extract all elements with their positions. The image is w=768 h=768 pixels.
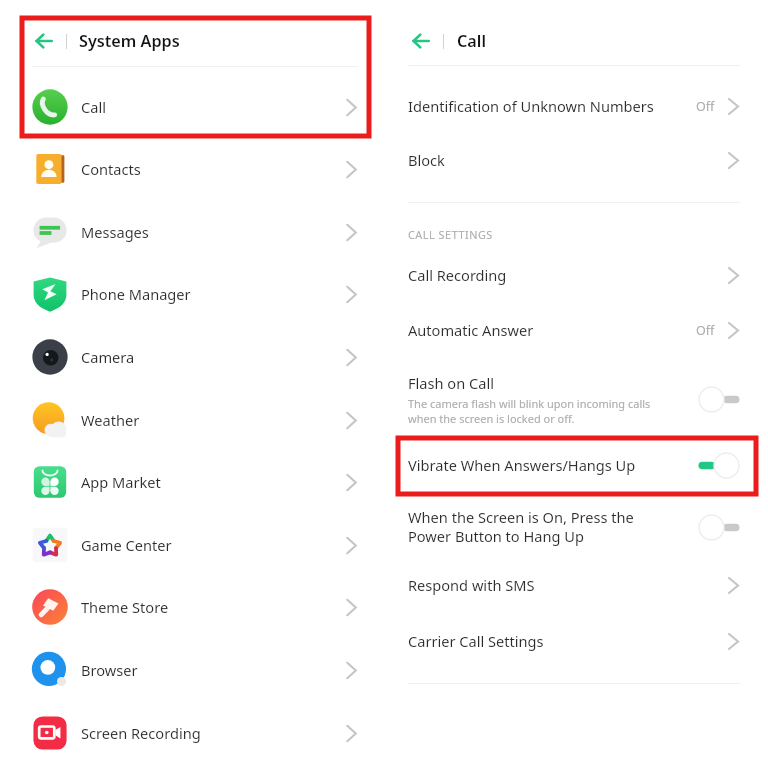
- staticText: Call Recording: [408, 265, 507, 285]
- button[interactable]: Back: [31, 28, 57, 54]
- staticText: Weather: [81, 410, 140, 430]
- button[interactable]: Toggle on: [698, 452, 740, 479]
- staticText: Carrier Call Settings: [408, 631, 544, 651]
- staticText: CALL SETTINGS: [408, 227, 493, 242]
- staticText: When the Screen is On, Press the Power B…: [408, 507, 634, 547]
- button[interactable]: Flash on Call: [384, 363, 768, 435]
- button[interactable]: Screen Recording: [0, 702, 384, 764]
- button[interactable]: Identification of Unknown Numbers: [384, 81, 768, 131]
- staticText: System Apps: [79, 30, 180, 52]
- staticText: Flash on Call: [408, 373, 494, 393]
- button[interactable]: Back: [409, 28, 433, 54]
- staticText: Identification of Unknown Numbers: [408, 96, 654, 116]
- button[interactable]: Call Recording: [384, 250, 768, 300]
- button[interactable]: Toggle off: [698, 386, 740, 413]
- button[interactable]: Messages: [0, 201, 384, 263]
- button[interactable]: Theme Store: [0, 576, 384, 638]
- button[interactable]: Carrier Call Settings: [384, 616, 768, 666]
- staticText: Contacts: [81, 159, 141, 179]
- staticText: Phone Manager: [81, 284, 191, 304]
- staticText: Off: [696, 322, 715, 339]
- button[interactable]: Camera: [0, 326, 384, 388]
- staticText: Screen Recording: [81, 723, 201, 743]
- button[interactable]: When the Screen is On, Press the Power B…: [384, 496, 768, 558]
- staticText: App Market: [81, 472, 161, 492]
- staticText: Game Center: [81, 535, 172, 555]
- button[interactable]: Browser: [0, 639, 384, 701]
- button[interactable]: Game Center: [0, 514, 384, 576]
- staticText: Browser: [81, 660, 138, 680]
- button[interactable]: Call: [0, 76, 384, 138]
- button[interactable]: Block: [384, 135, 768, 185]
- button[interactable]: Weather: [0, 389, 384, 451]
- staticText: Messages: [81, 222, 149, 242]
- staticText: Off: [696, 98, 715, 115]
- staticText: Call: [457, 30, 486, 52]
- staticText: Call: [81, 97, 106, 117]
- staticText: The camera flash will blink upon incomin…: [408, 396, 651, 426]
- staticText: Automatic Answer: [408, 320, 534, 340]
- staticText: Respond with SMS: [408, 575, 535, 595]
- button[interactable]: Respond with SMS: [384, 560, 768, 610]
- staticText: Camera: [81, 347, 135, 367]
- staticText: Vibrate When Answers/Hangs Up: [408, 455, 636, 475]
- button[interactable]: Toggle off: [698, 514, 740, 541]
- button[interactable]: Automatic Answer: [384, 305, 768, 355]
- button[interactable]: Phone Manager: [0, 263, 384, 325]
- button[interactable]: Contacts: [0, 138, 384, 200]
- button[interactable]: Vibrate When Answers/Hangs Up: [384, 440, 768, 490]
- button[interactable]: App Market: [0, 451, 384, 513]
- staticText: Theme Store: [81, 597, 169, 617]
- staticText: Block: [408, 150, 445, 170]
